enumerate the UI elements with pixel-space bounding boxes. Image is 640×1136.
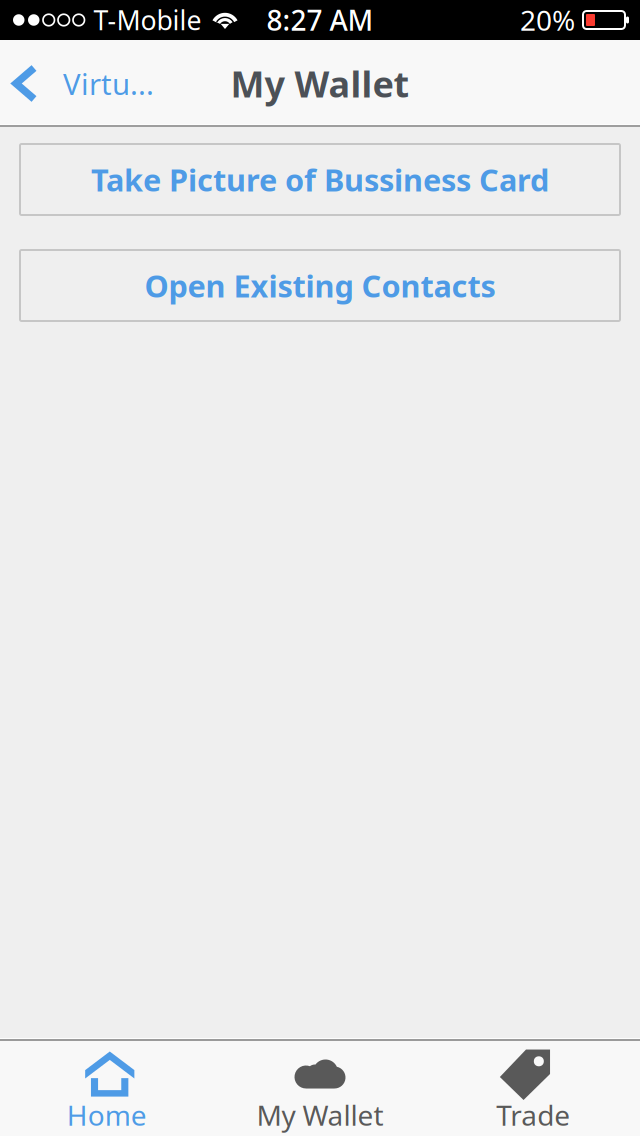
button[interactable]: Trade <box>427 1038 640 1136</box>
button[interactable]: Virtu... <box>0 41 168 125</box>
staticText: Take Picture of Bussiness Card <box>91 159 549 200</box>
staticText: T-Mobile <box>93 2 201 38</box>
button[interactable]: My Wallet <box>213 1038 427 1136</box>
button[interactable]: Take Picture of Bussiness Card <box>20 144 620 215</box>
staticText: Trade <box>496 1096 570 1134</box>
staticText: Virtu... <box>63 64 154 103</box>
staticText: 8:27 AM <box>266 1 373 39</box>
button[interactable]: Open Existing Contacts <box>20 250 620 321</box>
staticText: 20% <box>520 1 575 39</box>
button[interactable]: Home <box>0 1038 213 1136</box>
staticText: My Wallet <box>230 60 409 107</box>
staticText: My Wallet <box>256 1096 383 1134</box>
staticText: Home <box>67 1096 147 1134</box>
staticText: Open Existing Contacts <box>144 265 495 306</box>
